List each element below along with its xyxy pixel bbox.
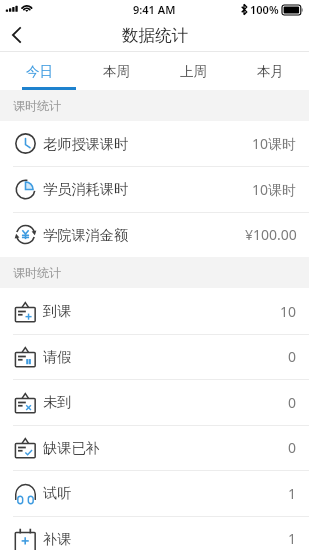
button[interactable]: 未到 — [0, 379, 309, 425]
staticText: 本月 — [257, 63, 284, 80]
button[interactable]: 补课 — [0, 516, 309, 550]
staticText: 1 — [288, 484, 297, 503]
button[interactable]: 缺课已补 — [0, 425, 309, 470]
staticText: 学院课消金额 — [43, 226, 129, 244]
staticText: 缺课已补 — [43, 439, 100, 457]
button[interactable]: 今日 — [0, 52, 78, 90]
staticText: 本周 — [103, 63, 130, 80]
button[interactable]: 学院课消金额 — [0, 212, 309, 257]
staticText: 请假 — [43, 348, 72, 366]
staticText: 课时统计 — [13, 265, 61, 280]
staticText: 数据统计 — [122, 25, 188, 46]
staticText: 10 — [280, 302, 297, 321]
button[interactable]: 请假 — [0, 334, 309, 379]
staticText: 今日 — [26, 63, 53, 80]
staticText: 100% — [250, 2, 279, 17]
staticText: 10课时 — [252, 180, 297, 199]
button[interactable]: 学员消耗课时 — [0, 166, 309, 212]
staticText: 0 — [288, 438, 297, 457]
button[interactable]: 试听 — [0, 470, 309, 516]
button[interactable]: 上周 — [155, 52, 232, 90]
button[interactable]: 到课 — [0, 288, 309, 334]
button[interactable]: 老师授课课时 — [0, 121, 309, 166]
staticText: 老师授课课时 — [43, 135, 129, 153]
staticText: 0 — [288, 347, 297, 366]
staticText: 上周 — [180, 63, 207, 80]
staticText: 10课时 — [252, 134, 297, 153]
staticText: 9:41 AM — [133, 2, 176, 17]
button[interactable]: 本月 — [232, 52, 309, 90]
staticText: 0 — [288, 393, 297, 412]
staticText: 1 — [288, 529, 297, 548]
staticText: 补课 — [43, 530, 72, 548]
staticText: 课时统计 — [13, 98, 61, 113]
staticText: 未到 — [43, 393, 72, 411]
button[interactable]: 本周 — [78, 52, 155, 90]
staticText: ¥100.00 — [245, 225, 297, 244]
staticText: 试听 — [43, 484, 72, 502]
button[interactable]: Back — [0, 18, 33, 52]
staticText: 学员消耗课时 — [43, 180, 129, 198]
staticText: 到课 — [43, 302, 72, 320]
